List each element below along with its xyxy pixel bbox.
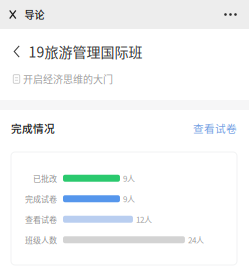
button[interactable]: Close bbox=[0, 0, 20, 29]
button[interactable]: 查看试卷 bbox=[193, 120, 237, 136]
button[interactable]: 19旅游管理国际班 bbox=[0, 37, 249, 66]
staticText: 完成试卷 bbox=[25, 193, 57, 205]
staticText: 导论 bbox=[24, 7, 44, 22]
staticText: 完成情况 bbox=[11, 120, 55, 136]
staticText: 班级人数 bbox=[25, 234, 57, 246]
staticText: 查看试卷 bbox=[193, 120, 237, 136]
staticText: 已批改 bbox=[33, 172, 57, 184]
button[interactable]: More bbox=[216, 0, 249, 29]
staticText: 9人 bbox=[123, 193, 135, 205]
staticText: 查看试卷 bbox=[25, 213, 57, 225]
staticText: 9人 bbox=[123, 172, 135, 184]
staticText: 开启经济思维的大门 bbox=[23, 72, 113, 86]
staticText: 12人 bbox=[136, 213, 152, 225]
staticText: 24人 bbox=[188, 234, 204, 246]
staticText: 19旅游管理国际班 bbox=[28, 41, 142, 62]
